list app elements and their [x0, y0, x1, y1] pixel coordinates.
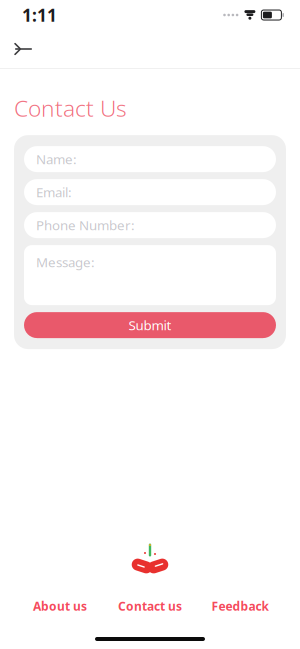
staticText: Name:	[36, 150, 77, 168]
button[interactable]: Feedback	[195, 595, 285, 617]
staticText: Email:	[36, 183, 72, 201]
staticText: Feedback	[211, 598, 268, 614]
button[interactable]: Contact us	[105, 595, 195, 617]
staticText: Message:	[36, 253, 95, 271]
staticText: Submit	[128, 316, 171, 334]
staticText: 1:11	[22, 3, 57, 26]
staticText: Phone Number:	[36, 216, 135, 234]
button[interactable]: Submit	[24, 312, 276, 338]
staticText: Contact us	[118, 598, 182, 614]
button[interactable]: About us	[15, 595, 105, 617]
staticText: Contact Us	[14, 93, 127, 123]
button[interactable]: Back	[0, 31, 44, 67]
staticText: About us	[33, 598, 87, 614]
